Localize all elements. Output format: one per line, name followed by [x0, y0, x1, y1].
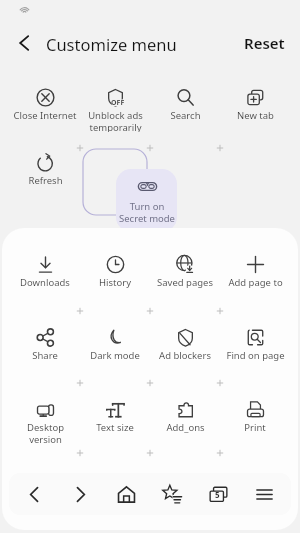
- button[interactable]: Print: [219, 400, 291, 444]
- staticText: Text size: [96, 421, 134, 434]
- button[interactable]: Refresh: [9, 153, 81, 197]
- button[interactable]: Dark mode: [79, 328, 151, 372]
- staticText: Desktop version: [27, 421, 64, 444]
- staticText: Saved pages: [157, 276, 213, 289]
- button[interactable]: Bookmarks: [151, 473, 193, 515]
- button[interactable]: Unblock ads temporarily: [79, 88, 151, 132]
- staticText: Reset: [244, 33, 285, 53]
- button[interactable]: Reset: [240, 29, 289, 57]
- button[interactable]: Menu: [243, 473, 285, 515]
- staticText: Print: [244, 421, 266, 434]
- button[interactable]: History: [79, 255, 151, 299]
- staticText: Search: [170, 109, 201, 122]
- button[interactable]: Close Internet: [9, 88, 81, 132]
- button[interactable]: Add page to: [219, 255, 291, 299]
- staticText: Customize menu: [46, 33, 177, 55]
- button[interactable]: Back: [13, 473, 55, 515]
- staticText: History: [99, 276, 131, 289]
- button[interactable]: Forward: [59, 473, 101, 515]
- staticText: 5: [215, 489, 220, 500]
- staticText: Unblock ads temporarily: [88, 109, 143, 132]
- button[interactable]: Home: [105, 473, 147, 515]
- staticText: OFF: [111, 98, 125, 108]
- staticText: Find on page: [226, 349, 285, 362]
- button[interactable]: Ad blockers: [149, 328, 221, 372]
- button[interactable]: Tabs: [197, 473, 239, 515]
- staticText: Ad blockers: [159, 349, 211, 362]
- button[interactable]: Turn on Secret mode: [116, 169, 177, 232]
- button[interactable]: Find on page: [219, 328, 291, 372]
- button[interactable]: New tab: [219, 88, 291, 132]
- button[interactable]: Add_ons: [149, 400, 221, 444]
- button[interactable]: Text size: [79, 400, 151, 444]
- button[interactable]: Saved pages: [149, 255, 221, 299]
- staticText: Turn on Secret mode: [119, 200, 175, 225]
- staticText: New tab: [237, 109, 274, 122]
- button[interactable]: Share: [9, 328, 81, 372]
- staticText: Add page to: [228, 276, 283, 289]
- button[interactable]: Downloads: [9, 255, 81, 299]
- staticText: Share: [32, 349, 58, 362]
- staticText: Refresh: [28, 174, 63, 187]
- button[interactable]: Back: [10, 28, 40, 58]
- button[interactable]: Desktop version: [9, 400, 81, 444]
- staticText: Dark mode: [90, 349, 140, 362]
- button[interactable]: Search: [149, 88, 221, 132]
- staticText: Downloads: [20, 276, 70, 289]
- staticText: Close Internet: [13, 109, 77, 122]
- staticText: Add_ons: [166, 421, 205, 434]
